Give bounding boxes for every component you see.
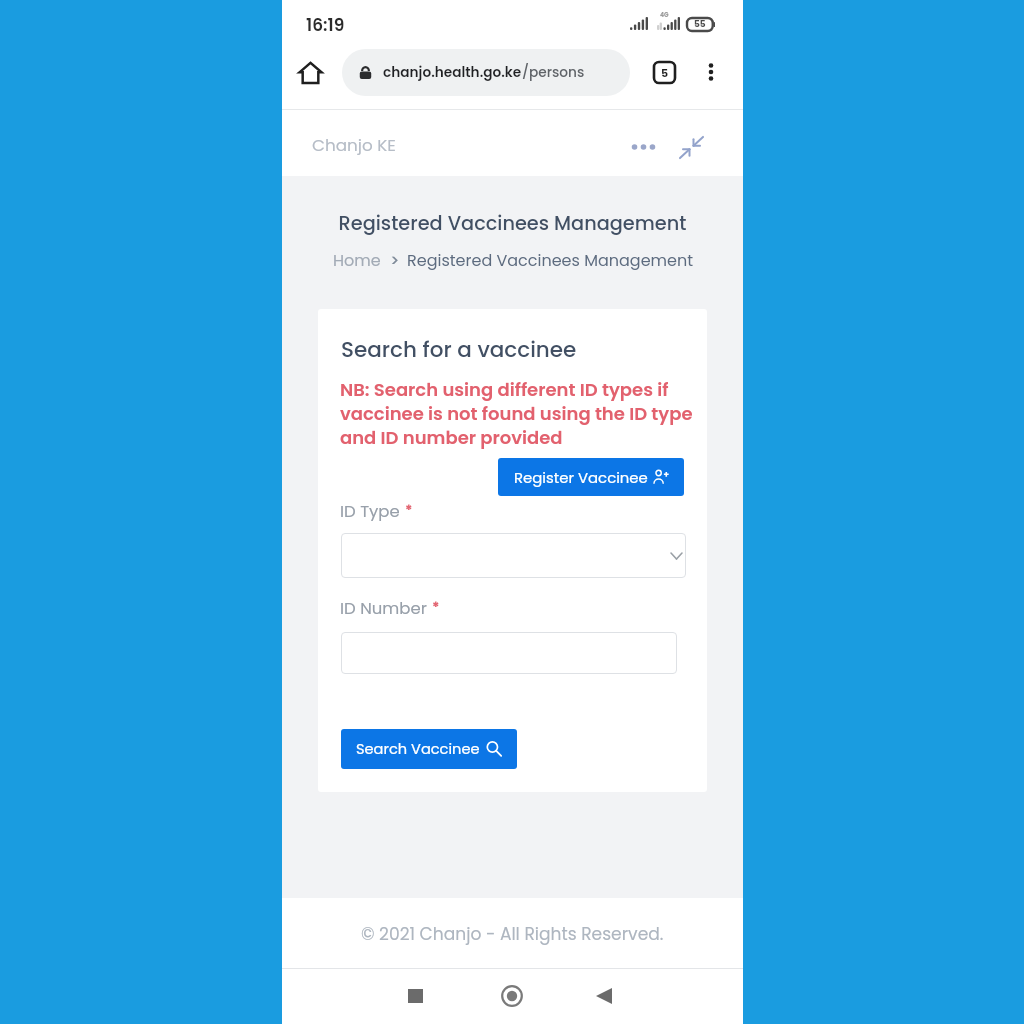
staticText: Chanjo KE (312, 133, 396, 157)
staticText: ID Type (340, 500, 400, 523)
staticText: 16:19 (306, 13, 345, 37)
staticText: Register Vaccinee (514, 467, 648, 488)
button[interactable]: Recent apps (392, 973, 438, 1019)
staticText: * (405, 500, 413, 520)
button[interactable]: Home page (292, 54, 329, 91)
staticText: * (432, 597, 440, 617)
staticText: Registered Vaccinees Management (407, 249, 694, 271)
staticText: /persons (522, 63, 585, 82)
button[interactable]: Search Vaccinee (341, 729, 517, 769)
staticText: Search for a vaccinee (341, 334, 577, 364)
staticText: Registered Vaccinees Management (282, 210, 743, 237)
button[interactable]: Home (331, 245, 383, 275)
staticText: NB: Search using different ID types if v… (340, 377, 693, 450)
button[interactable] (341, 533, 686, 578)
staticText: 5 (661, 65, 669, 80)
staticText: Home (333, 249, 381, 271)
button[interactable]: Home (489, 973, 535, 1019)
staticText: © 2021 Chanjo - All Rights Reserved. (361, 922, 664, 946)
button[interactable]: More (628, 133, 659, 161)
button[interactable]: chanjo.health.go.ke (342, 49, 630, 96)
button[interactable]: Tabs, 5 open (650, 58, 678, 86)
staticText: > (390, 249, 400, 271)
button[interactable]: Collapse (676, 132, 706, 162)
button[interactable]: Back (581, 973, 627, 1019)
button[interactable]: Chanjo KE (310, 129, 398, 161)
button[interactable]: Register Vaccinee (498, 458, 684, 496)
staticText: 4G (660, 11, 669, 19)
staticText: ID Number (340, 597, 427, 620)
staticText: Search Vaccinee (356, 739, 480, 759)
button[interactable] (341, 632, 677, 674)
staticText: chanjo.health.go.ke (383, 63, 522, 82)
button[interactable]: More options (696, 57, 726, 87)
staticText: 55 (694, 18, 706, 31)
